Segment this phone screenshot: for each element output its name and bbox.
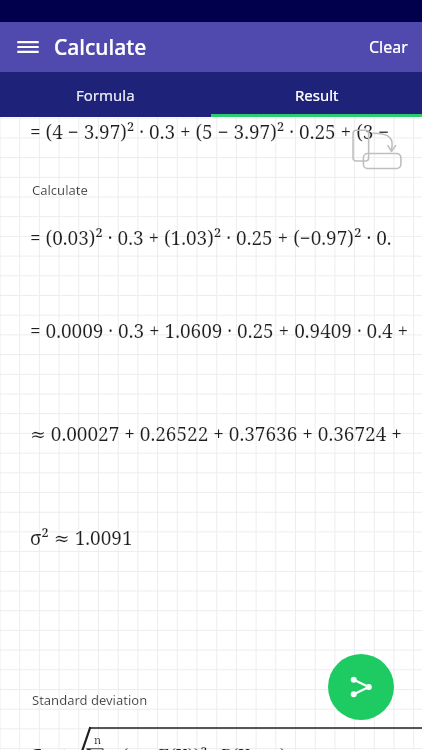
button[interactable]: Result: [211, 72, 422, 117]
staticText: σ =: [30, 740, 57, 750]
staticText: = (0.03)² · 0.3 + (1.03)² · 0.25 + (−0.9…: [30, 225, 392, 251]
staticText: (x − E(X))² · P(X = x): [122, 743, 287, 750]
staticText: ∑: [86, 742, 108, 750]
staticText: = (4 − 3.97)² · 0.3 + (5 − 3.97)² · 0.25…: [30, 119, 390, 145]
staticText: Calculate: [54, 33, 147, 62]
button[interactable]: Formula: [0, 72, 211, 117]
staticText: ≈ 0.00027 + 0.26522 + 0.37636 + 0.36724 …: [30, 421, 407, 447]
button[interactable]: Share: [328, 654, 394, 720]
button[interactable]: Clear: [355, 28, 422, 66]
button[interactable]: Open navigation menu: [10, 29, 46, 65]
staticText: n: [94, 732, 102, 747]
staticText: = 0.0009 · 0.3 + 1.0609 · 0.25 + 0.9409 …: [30, 318, 409, 344]
staticText: Standard deviation: [32, 691, 148, 709]
staticText: σ² ≈ 1.0091: [30, 525, 133, 551]
staticText: Clear: [369, 36, 408, 58]
staticText: Formula: [76, 85, 135, 105]
staticText: Result: [295, 85, 339, 105]
staticText: Calculate: [32, 181, 88, 199]
